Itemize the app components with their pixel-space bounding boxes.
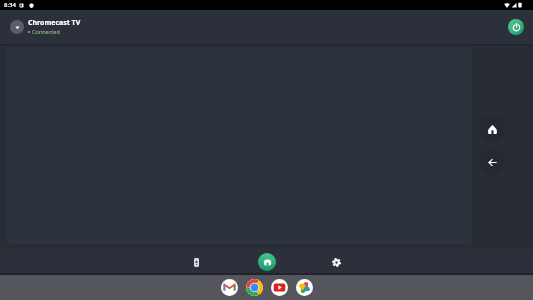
button[interactable]: Back <box>479 149 505 175</box>
staticText: Connected <box>32 28 60 35</box>
button[interactable]: Cast device <box>10 20 24 34</box>
button[interactable]: Photos <box>296 279 313 296</box>
button[interactable]: Home <box>479 116 505 142</box>
button[interactable]: Settings <box>325 251 348 274</box>
button[interactable]: Power <box>508 19 524 35</box>
button[interactable]: Remote <box>185 251 208 274</box>
button[interactable]: Chrome <box>246 279 263 296</box>
staticText: Chromecast TV <box>28 18 81 28</box>
button[interactable]: Game controller <box>258 253 276 271</box>
button[interactable]: YouTube <box>271 279 288 296</box>
button[interactable]: Gmail <box>221 279 238 296</box>
staticText: 8:34 <box>4 1 16 9</box>
